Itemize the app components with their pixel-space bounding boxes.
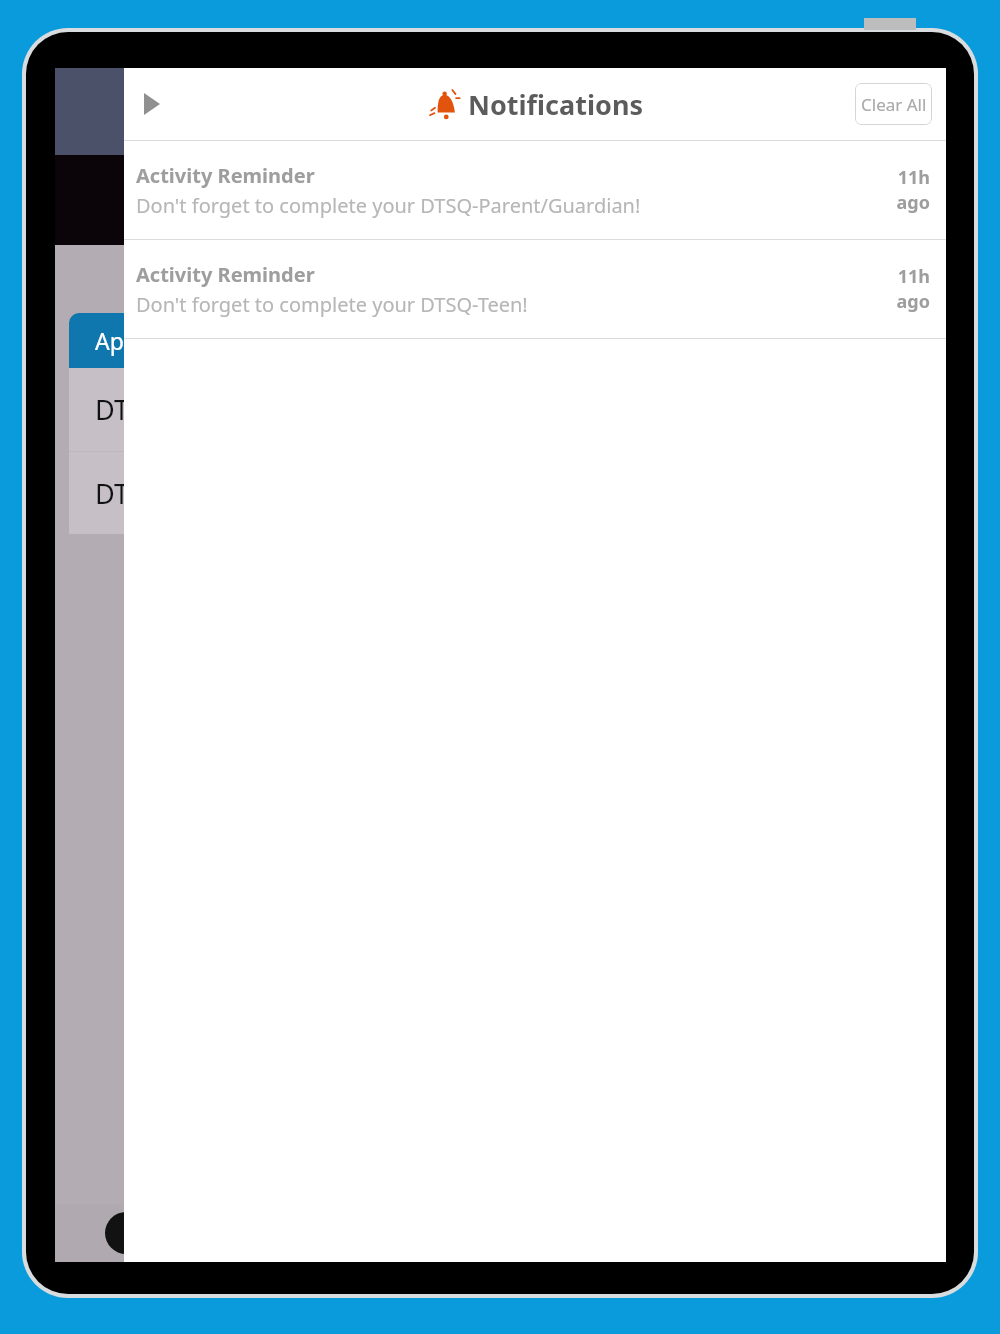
staticText: 11h [897, 165, 930, 190]
staticText: Clear All [861, 93, 927, 116]
staticText: DTSQ-Teen [95, 391, 233, 428]
button[interactable]: Back [128, 80, 176, 128]
staticText: 11h [897, 264, 930, 289]
staticText: Don't forget to complete your DTSQ-Paren… [136, 192, 641, 219]
staticText: Activity Reminder [136, 261, 315, 288]
button[interactable]: Clear All [855, 83, 932, 125]
staticText: DTSQ-Parent [95, 475, 258, 512]
staticText: ago [896, 289, 930, 314]
staticText: Don't forget to complete your DTSQ-Teen! [136, 291, 528, 318]
staticText: Notifications [468, 86, 643, 123]
staticText: Apr 20, 2024 [95, 325, 231, 356]
button[interactable]: Activity Reminder [124, 240, 946, 338]
staticText: ago [896, 190, 930, 215]
staticText: Activity Reminder [136, 162, 315, 189]
button[interactable]: Activity Reminder [124, 141, 946, 239]
